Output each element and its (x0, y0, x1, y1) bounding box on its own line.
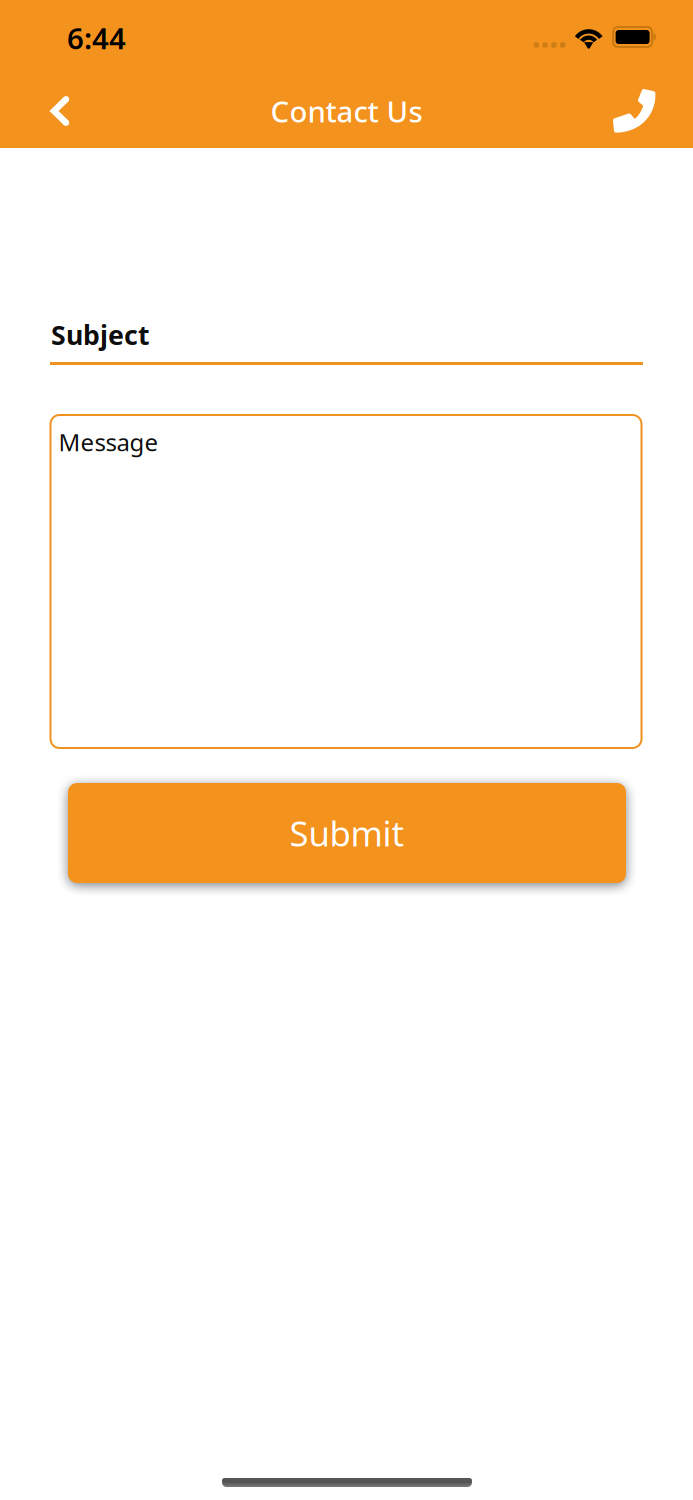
staticText: Submit (289, 810, 404, 856)
button[interactable]: Back (32, 80, 88, 142)
staticText: Message (58, 426, 158, 458)
staticText: 6:44 (67, 18, 126, 57)
button[interactable]: Submit (68, 783, 626, 883)
button[interactable]: Call (603, 80, 665, 142)
staticText: Subject (51, 317, 150, 352)
button[interactable]: Subject (50, 313, 643, 365)
button[interactable]: Message (50, 415, 641, 748)
staticText: Contact Us (270, 91, 422, 130)
